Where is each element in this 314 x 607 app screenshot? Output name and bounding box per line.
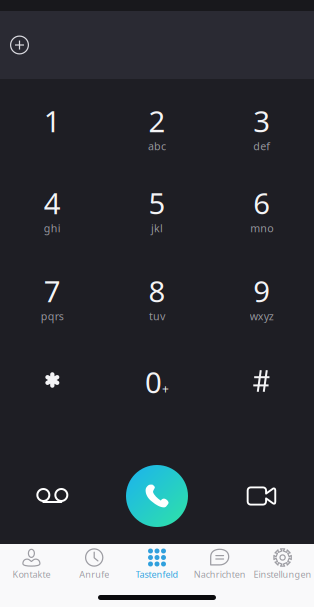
staticText: Anrufe bbox=[79, 568, 109, 580]
button[interactable] bbox=[209, 340, 314, 400]
staticText: + bbox=[162, 381, 169, 397]
staticText: wxyz bbox=[250, 309, 274, 323]
staticText: 2 bbox=[148, 101, 165, 141]
button[interactable]: FaceTime bbox=[209, 487, 314, 505]
button[interactable]: Tastenfeld bbox=[126, 544, 188, 580]
staticText: 3 bbox=[253, 101, 270, 141]
staticText: Kontakte bbox=[12, 568, 50, 580]
button[interactable]: 0 bbox=[105, 340, 209, 400]
staticText: mno bbox=[250, 221, 273, 235]
staticText: Tastenfeld bbox=[135, 568, 178, 580]
button[interactable]: Anrufe bbox=[63, 544, 126, 580]
staticText: ghi bbox=[44, 221, 61, 235]
staticText: pqrs bbox=[41, 309, 64, 323]
button[interactable] bbox=[0, 340, 105, 400]
staticText: 9 bbox=[253, 271, 270, 311]
staticText: Nachrichten bbox=[194, 568, 246, 580]
staticText: 1 bbox=[44, 101, 61, 141]
button[interactable]: Add number bbox=[0, 25, 39, 64]
staticText: tuv bbox=[149, 309, 165, 323]
staticText: 4 bbox=[44, 183, 61, 223]
button[interactable]: 8 bbox=[105, 249, 209, 340]
button[interactable]: 7 bbox=[0, 249, 105, 340]
staticText: Einstellungen bbox=[254, 568, 312, 580]
staticText: jkl bbox=[151, 221, 163, 235]
button[interactable]: Kontakte bbox=[0, 544, 63, 580]
button[interactable]: 1 bbox=[0, 79, 105, 161]
button[interactable]: 4 bbox=[0, 161, 105, 249]
staticText: 0 bbox=[145, 362, 162, 402]
button[interactable]: Voicemail bbox=[0, 488, 105, 504]
staticText: abc bbox=[148, 139, 166, 153]
staticText: def bbox=[253, 139, 270, 153]
button[interactable]: 9 bbox=[209, 249, 314, 340]
button[interactable]: 2 bbox=[105, 79, 209, 161]
button[interactable]: Call bbox=[105, 465, 209, 527]
staticText: 8 bbox=[148, 271, 165, 311]
button[interactable]: Nachrichten bbox=[188, 544, 251, 580]
staticText: 7 bbox=[44, 271, 61, 311]
staticText: 5 bbox=[148, 183, 165, 223]
button[interactable]: 3 bbox=[209, 79, 314, 161]
staticText: 6 bbox=[253, 183, 270, 223]
button[interactable]: 5 bbox=[105, 161, 209, 249]
button[interactable]: Einstellungen bbox=[251, 544, 314, 580]
button[interactable]: 6 bbox=[209, 161, 314, 249]
